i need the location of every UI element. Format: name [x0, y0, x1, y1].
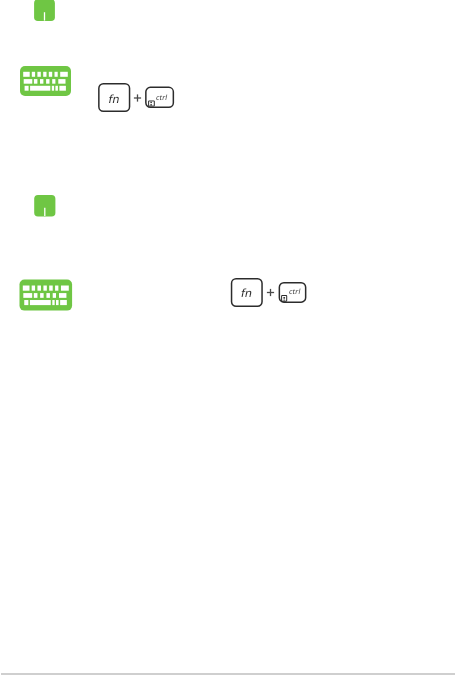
- button[interactable]: Keyboard: [20, 66, 71, 96]
- button[interactable]: fn plus ctrl shortcut: [231, 278, 307, 307]
- button[interactable]: Keyboard: [19, 279, 72, 310]
- button[interactable]: Touchpad: [34, 195, 55, 216]
- button[interactable]: Touchpad: [34, 0, 55, 21]
- button[interactable]: fn plus ctrl shortcut: [98, 83, 174, 112]
